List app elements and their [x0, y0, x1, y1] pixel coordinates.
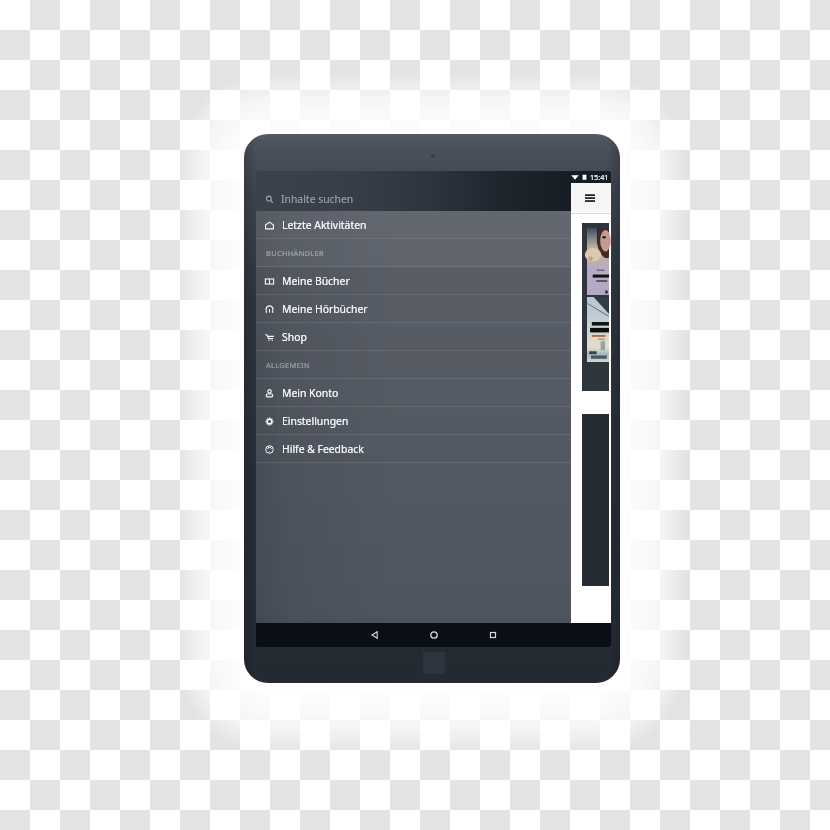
- button[interactable]: Meine Bücher: [256, 267, 571, 295]
- staticText: ALLGEMEIN: [266, 360, 310, 370]
- button[interactable]: Einstellungen: [256, 407, 571, 435]
- staticText: Meine Hörbücher: [282, 302, 368, 316]
- button[interactable]: Recent apps: [483, 625, 503, 645]
- staticText: Mein Konto: [282, 386, 339, 400]
- staticText: Inhalte suchen: [281, 192, 354, 206]
- staticText: Einstellungen: [282, 414, 349, 428]
- staticText: Shop: [282, 330, 307, 344]
- button[interactable]: Hilfe & Feedback: [256, 435, 571, 463]
- button[interactable]: Open navigation menu: [580, 188, 600, 208]
- staticText: Letzte Aktivitäten: [282, 218, 367, 232]
- button[interactable]: Meine Hörbücher: [256, 295, 571, 323]
- button[interactable]: Mein Konto: [256, 379, 571, 407]
- button[interactable]: Letzte Aktivitäten: [256, 211, 571, 239]
- staticText: Hilfe & Feedback: [282, 442, 364, 456]
- staticText: Meine Bücher: [282, 274, 350, 288]
- button[interactable]: Home: [424, 625, 444, 645]
- staticText: 15:41: [590, 172, 609, 182]
- button[interactable]: Shop: [256, 323, 571, 351]
- button[interactable]: Back: [365, 625, 385, 645]
- staticText: BUCHHÄNDLER: [266, 248, 324, 258]
